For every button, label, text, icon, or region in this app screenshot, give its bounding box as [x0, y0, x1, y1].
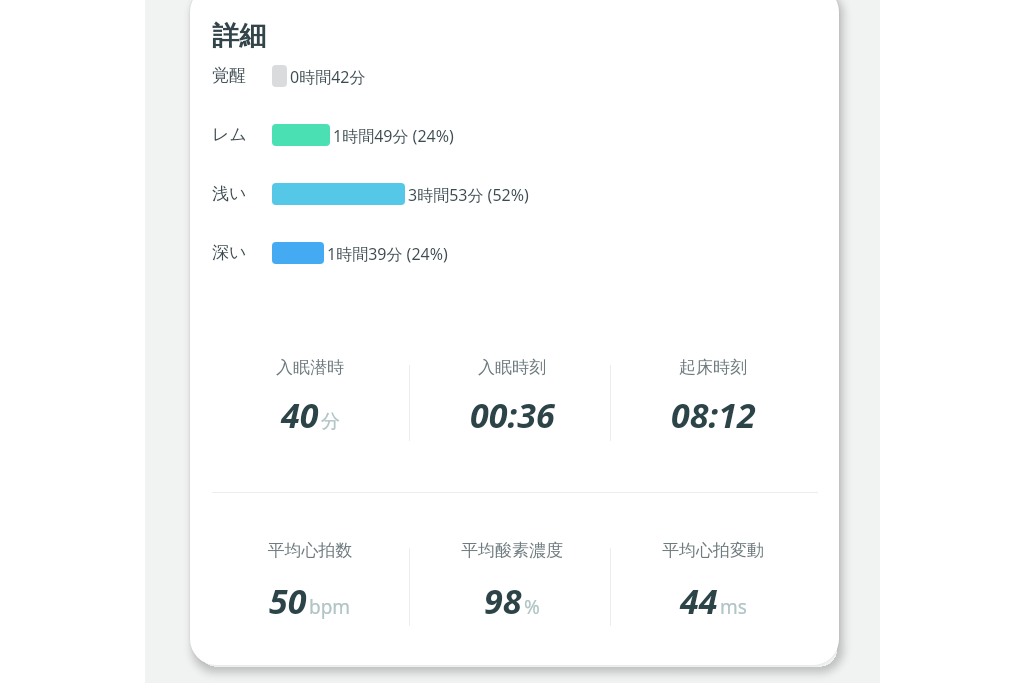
staticText: 50	[269, 578, 307, 624]
staticText: 詳細	[212, 19, 266, 53]
staticText: 00:36	[470, 392, 555, 438]
staticText: 覚醒	[212, 65, 246, 86]
button[interactable]: 入眠潜時	[215, 357, 405, 378]
staticText: 1時間49分 (24%)	[333, 125, 454, 147]
staticText: 平均心拍変動	[618, 540, 808, 561]
staticText: ms	[720, 594, 747, 620]
staticText: レム	[212, 124, 247, 145]
staticText: 平均心拍数	[215, 540, 405, 561]
staticText: 起床時刻	[618, 357, 808, 378]
staticText: 1時間39分 (24%)	[327, 243, 448, 265]
staticText: 平均酸素濃度	[417, 540, 607, 561]
staticText: 44	[680, 578, 718, 624]
staticText: %	[524, 594, 540, 620]
button[interactable]: 平均心拍変動	[618, 540, 808, 561]
staticText: 入眠時刻	[417, 357, 607, 378]
other: レム bar	[272, 124, 330, 146]
staticText: 3時間53分 (52%)	[408, 184, 529, 206]
button[interactable]: 詳細	[190, 0, 839, 665]
button[interactable]: 入眠時刻	[417, 357, 607, 378]
staticText: 40	[281, 392, 319, 438]
staticText: 98	[484, 578, 522, 624]
other: 浅い bar	[272, 183, 405, 205]
other: 覚醒 bar	[272, 65, 287, 87]
staticText: 08:12	[671, 392, 756, 438]
staticText: 入眠潜時	[215, 357, 405, 378]
staticText: 浅い	[212, 183, 247, 204]
staticText: 0時間42分	[290, 66, 366, 88]
staticText: 深い	[212, 242, 247, 263]
button[interactable]: 起床時刻	[618, 357, 808, 378]
button[interactable]: 平均酸素濃度	[417, 540, 607, 561]
staticText: 分	[321, 410, 340, 434]
staticText: bpm	[309, 594, 351, 620]
button[interactable]: 平均心拍数	[215, 540, 405, 561]
other: 深い bar	[272, 242, 324, 264]
